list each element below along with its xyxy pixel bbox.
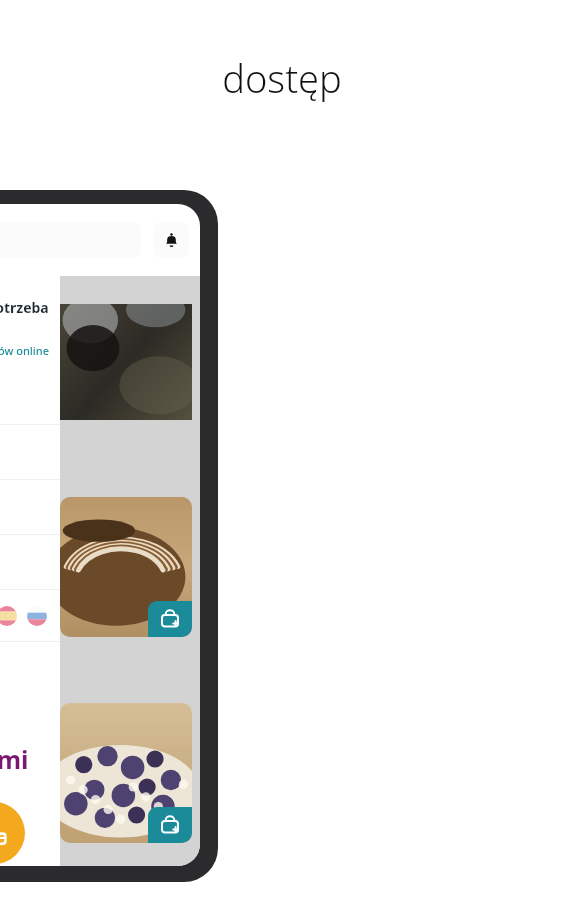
staticText: Fodimi [0, 742, 29, 776]
button[interactable]: Dodaj do koszyka [148, 807, 192, 843]
button[interactable]: Fodimi [0, 742, 29, 776]
button[interactable]: Dodaj do koszyka [148, 601, 192, 637]
button[interactable] [60, 304, 192, 420]
staticText: Czego Ci potrzeba [0, 298, 49, 317]
staticText: produkty w sklepach obok Ciebie – zamów … [0, 343, 49, 358]
staticText: dostęp [222, 52, 342, 104]
button[interactable]: Dodaj do koszyka [60, 703, 192, 843]
button[interactable]: Koszyk [0, 802, 25, 864]
button[interactable]: Dodaj do koszyka [60, 497, 192, 637]
button[interactable]: Powiadomienia [153, 222, 189, 258]
